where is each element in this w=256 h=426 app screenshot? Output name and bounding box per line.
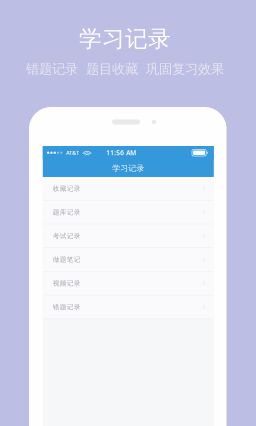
button[interactable]: 考试记录 [43,224,214,247]
button[interactable]: 错题记录 [43,295,214,319]
staticText: 做题笔记 [53,256,81,264]
button[interactable]: 题库记录 [43,201,214,224]
staticText: 错题记录 [53,303,81,311]
staticText: 收藏记录 [53,184,81,193]
staticText: 考试记录 [53,232,81,240]
button[interactable]: 做题笔记 [43,248,214,271]
button[interactable]: 视频记录 [43,272,214,295]
staticText: 学习记录 [79,25,171,53]
button[interactable]: 收藏记录 [43,177,214,200]
staticText: 11:56 AM [106,148,136,157]
staticText: AT&T [66,149,79,156]
staticText: 学习记录 [112,163,144,173]
staticText: 错题记录 题目收藏 巩固复习效果 [26,61,224,77]
staticText: 视频记录 [53,279,81,287]
staticText: 题库记录 [53,208,81,216]
